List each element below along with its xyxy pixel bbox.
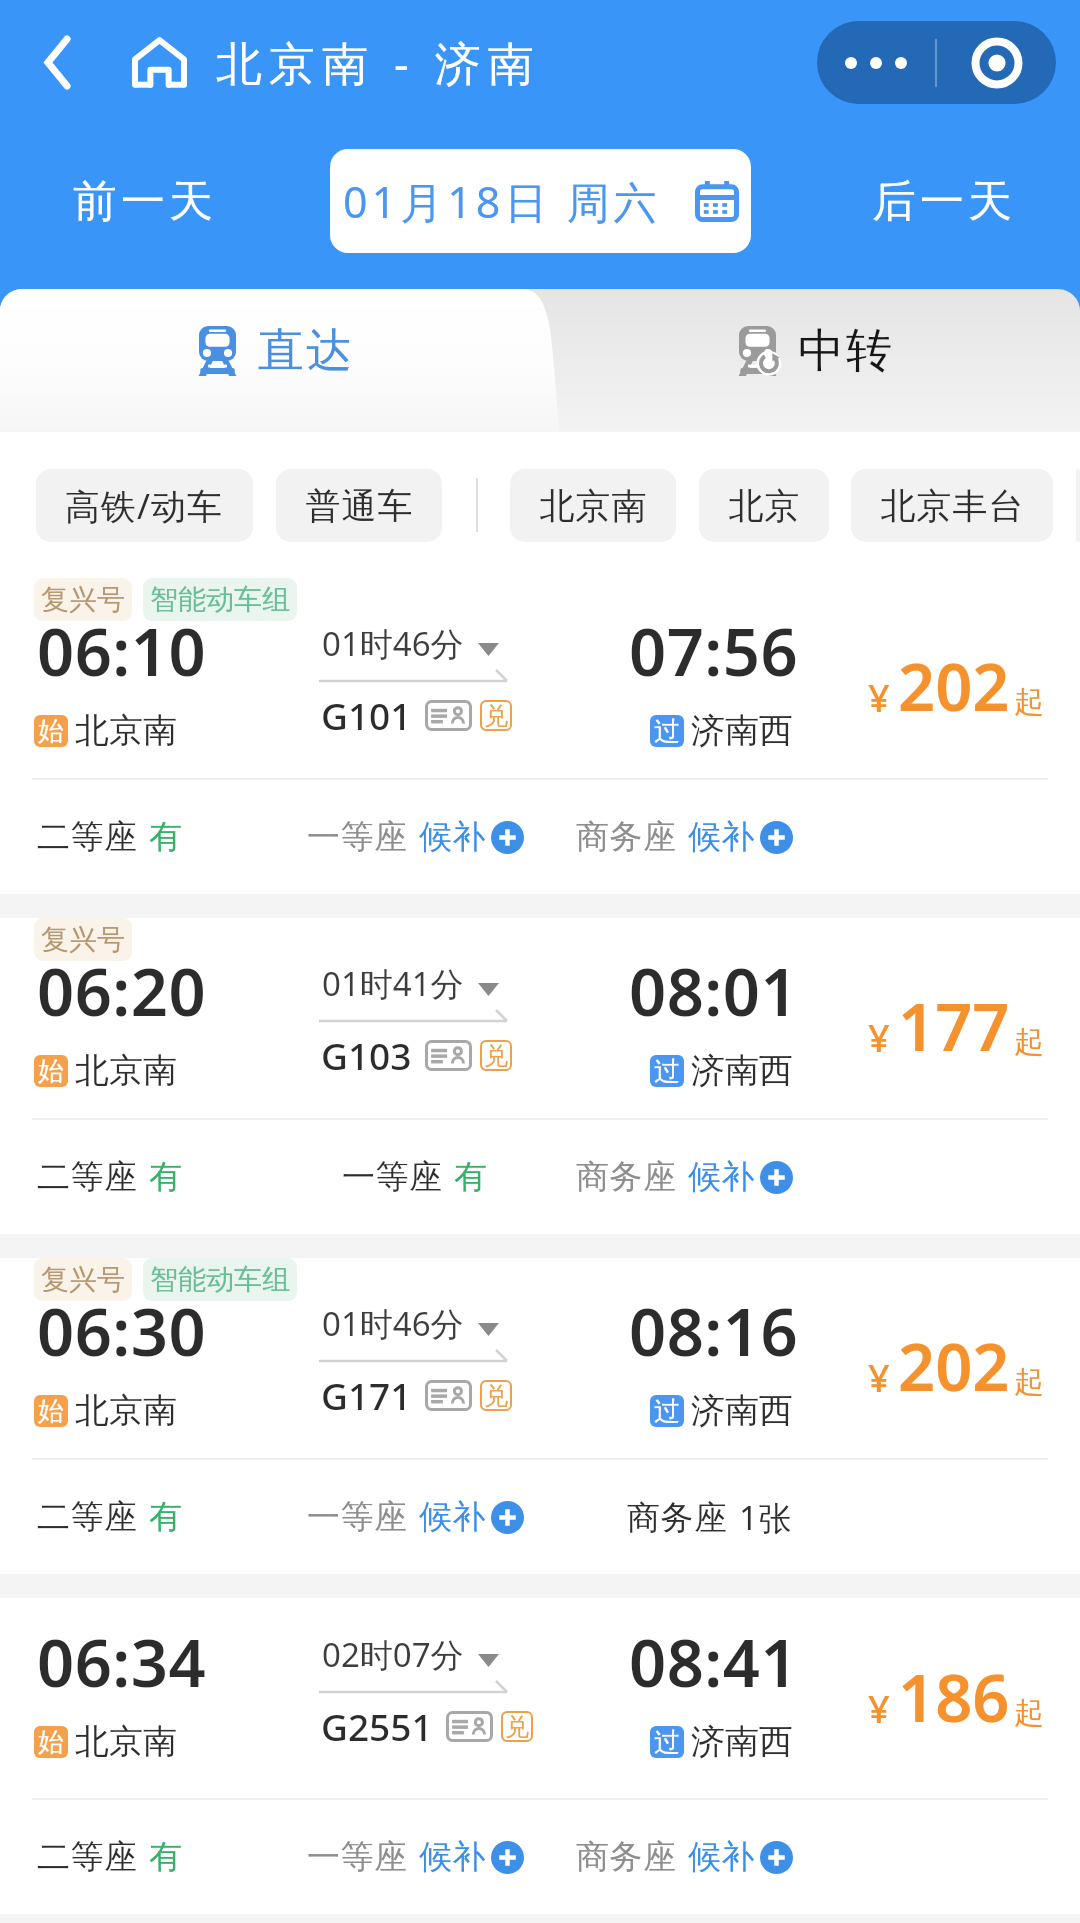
button[interactable]: 前一天 [57,162,229,241]
staticText: 候补 [419,1836,487,1878]
staticText: 二等座 [37,1496,138,1538]
staticText: 02时07分 [322,1632,464,1677]
button[interactable]: 商务座 [541,780,793,894]
staticText: 兑 [484,1381,508,1411]
staticText: 北京南 [75,709,177,752]
staticText: G171 [321,1370,412,1420]
staticText: 候补 [419,1496,487,1538]
button[interactable]: 01月18日 周六 [330,149,751,253]
staticText: 智能动车组 [150,1262,290,1297]
button[interactable]: 北京丰台 [851,469,1053,542]
staticText: 177 [898,982,1010,1071]
staticText: 济南西 [691,1720,793,1763]
button[interactable]: 复兴号 [0,578,1080,894]
staticText: 后一天 [870,174,1014,229]
staticText: 北京南 [75,1720,177,1763]
staticText: 济南西 [691,1049,793,1092]
staticText: G2551 [321,1701,433,1751]
staticText: 过 [654,1055,680,1087]
staticText: 始 [38,1055,64,1087]
button[interactable]: More options [817,21,935,104]
staticText: 北京丰台 [880,484,1024,528]
staticText: 202 [898,1322,1010,1411]
staticText: 北京南 [75,1049,177,1092]
staticText: 起 [1014,683,1044,721]
staticText: 兑 [505,1712,529,1742]
staticText: 商务座 [576,1156,677,1198]
staticText: ¥ [868,671,890,723]
staticText: 二等座 [37,1156,138,1198]
button[interactable]: 商务座 [541,1800,793,1914]
staticText: 06:10 [37,607,207,696]
staticText: 直达 [257,322,353,380]
staticText: 智能动车组 [150,582,290,617]
staticText: 北京南 - 济南 [216,31,541,94]
button[interactable]: 二等座 [37,780,289,894]
staticText: 始 [38,715,64,747]
staticText: 186 [898,1653,1010,1742]
staticText: 普通车 [305,484,413,528]
button[interactable]: Home [122,26,196,100]
staticText: 有 [149,1156,183,1198]
staticText: 1张 [739,1495,793,1540]
staticText: 一等座 [307,1496,408,1538]
button[interactable]: 高铁/动车 [36,469,253,542]
button[interactable]: 一等座 [289,1800,541,1914]
button[interactable]: Back [18,0,96,125]
staticText: 06:30 [37,1287,207,1376]
staticText: 候补 [688,816,756,858]
staticText: 二等座 [37,1836,138,1878]
staticText: 过 [654,715,680,747]
staticText: 兑 [484,1041,508,1071]
button[interactable]: 二等座 [37,1800,289,1914]
button[interactable]: 北京 [699,469,829,542]
staticText: 兑 [484,701,508,731]
staticText: 过 [654,1395,680,1427]
staticText: 01时46分 [322,621,464,666]
button[interactable]: 一等座 [289,780,541,894]
button[interactable]: 中转 [549,289,1080,412]
staticText: 起 [1014,1694,1044,1732]
staticText: 过 [654,1726,680,1758]
staticText: 有 [149,816,183,858]
button[interactable]: 复兴号 [0,1258,1080,1574]
button[interactable]: 二等座 [37,1120,289,1234]
staticText: 候补 [419,816,487,858]
staticText: 一等座 [307,1836,408,1878]
staticText: 一等座 [307,816,408,858]
staticText: ¥ [868,1682,890,1734]
staticText: 商务座 [576,816,677,858]
staticText: 01时46分 [322,1301,464,1346]
button[interactable]: 商务座 [541,1460,793,1574]
staticText: ¥ [868,1351,890,1403]
staticText: 北京南 [75,1389,177,1432]
button[interactable]: 复兴号 [0,918,1080,1234]
staticText: 复兴号 [41,922,125,957]
button[interactable]: 直达 [0,289,549,412]
staticText: 始 [38,1726,64,1758]
staticText: 起 [1014,1363,1044,1401]
button[interactable]: Close mini program [937,21,1056,104]
button[interactable]: 一等座 [289,1120,541,1234]
staticText: 有 [149,1836,183,1878]
staticText: 06:20 [37,947,207,1036]
staticText: 01时41分 [322,961,464,1006]
button[interactable]: 商务座 [541,1120,793,1234]
staticText: 08:16 [629,1287,799,1376]
button[interactable]: 后一天 [856,162,1028,241]
staticText: 中转 [797,322,893,380]
staticText: 商务座 [576,1836,677,1878]
button[interactable]: 06:34 [0,1598,1080,1914]
staticText: 商务座 [627,1497,728,1539]
staticText: G101 [321,690,412,740]
button[interactable]: 北京南 [510,469,676,542]
staticText: 06:34 [37,1618,207,1707]
staticText: 202 [898,642,1010,731]
staticText: 一等座 [342,1156,443,1198]
staticText: 前一天 [71,174,215,229]
staticText: 复兴号 [41,1262,125,1297]
button[interactable]: 一等座 [289,1460,541,1574]
button[interactable]: 普通车 [276,469,442,542]
button[interactable]: 二等座 [37,1460,289,1574]
